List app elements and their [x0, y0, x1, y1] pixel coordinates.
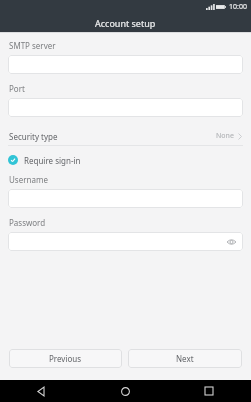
button[interactable]: Next: [128, 349, 242, 368]
staticText: Port: [9, 83, 25, 94]
button[interactable]: Previous: [9, 349, 122, 368]
button[interactable]: Show password: [225, 236, 237, 248]
button[interactable]: [8, 55, 243, 74]
button[interactable]: Back: [0, 380, 83, 402]
button[interactable]: Home: [83, 380, 167, 402]
button[interactable]: Security type: [0, 127, 251, 145]
button[interactable]: [8, 98, 243, 117]
staticText: Account setup: [95, 17, 156, 29]
button[interactable]: Show password: [8, 232, 243, 251]
staticText: Security type: [9, 131, 58, 142]
staticText: Require sign-in: [24, 155, 81, 166]
button[interactable]: [8, 189, 243, 208]
staticText: Previous: [49, 353, 82, 364]
staticText: SMTP server: [9, 40, 56, 51]
button[interactable]: Require sign-in: [0, 153, 251, 167]
button[interactable]: Recent apps: [167, 380, 251, 402]
staticText: Username: [9, 174, 48, 185]
staticText: Next: [176, 353, 194, 364]
staticText: 10:00: [229, 2, 247, 12]
staticText: None: [216, 131, 234, 141]
staticText: Password: [9, 217, 46, 228]
